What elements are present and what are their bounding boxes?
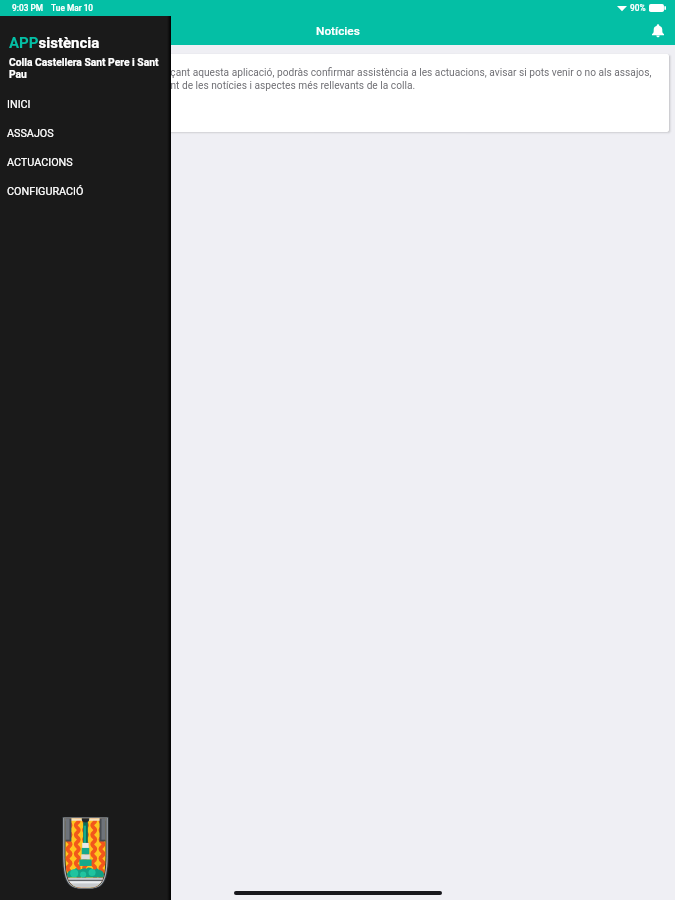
button[interactable]: ASSAJOS <box>0 119 171 148</box>
staticText: INICI <box>7 98 31 111</box>
button[interactable]: CONFIGURACIÓ <box>0 177 171 206</box>
staticText: i estar al corrent de les notícies i asp… <box>106 80 416 92</box>
staticText: Tue Mar 10 <box>51 3 94 13</box>
button[interactable]: Mitjançant aquesta aplicació, podràs con… <box>100 54 669 132</box>
staticText: APPsistència <box>9 34 100 52</box>
button[interactable]: INICI <box>0 90 171 119</box>
staticText: CONFIGURACIÓ <box>7 185 84 198</box>
staticText: 9:03 PM <box>12 3 43 13</box>
button[interactable]: ACTUACIONS <box>0 148 171 177</box>
staticText: Mitjançant aquesta aplicació, podràs con… <box>142 67 652 79</box>
staticText: ACTUACIONS <box>7 156 73 169</box>
button[interactable]: Notifications <box>647 20 669 42</box>
staticText: Notícies <box>316 24 360 38</box>
staticText: Colla Castellera Sant Pere i Sant Pau <box>9 56 163 80</box>
staticText: 90% <box>630 3 646 13</box>
staticText: ASSAJOS <box>7 127 54 140</box>
